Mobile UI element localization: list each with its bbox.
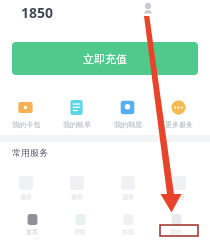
staticText: 常用服务: [12, 147, 48, 158]
button[interactable]: 立即充值: [12, 42, 198, 75]
button[interactable]: 发现: [104, 213, 152, 236]
button[interactable]: Account: [142, 2, 154, 14]
button[interactable]: 我的额度: [102, 99, 153, 129]
staticText: 我的卡包: [12, 120, 40, 129]
staticText: 服务: [173, 193, 185, 201]
button[interactable]: 我的账单: [51, 99, 102, 129]
button[interactable]: 理财: [56, 213, 104, 236]
staticText: 服务: [71, 193, 83, 201]
button[interactable]: 更多服务: [153, 99, 204, 129]
staticText: 服务: [122, 193, 134, 201]
staticText: 1850: [21, 3, 54, 22]
button[interactable]: 我的: [152, 213, 200, 236]
staticText: 我的额度: [114, 120, 142, 129]
staticText: 我的: [170, 228, 182, 236]
staticText: 我的账单: [63, 120, 91, 129]
button[interactable]: Service: [153, 176, 204, 201]
staticText: 首页: [26, 228, 38, 236]
button[interactable]: Service: [102, 176, 153, 201]
button[interactable]: Service: [51, 176, 102, 201]
staticText: 服务: [20, 193, 32, 201]
staticText: 立即充值: [83, 52, 127, 66]
button[interactable]: 我的卡包: [0, 99, 51, 129]
staticText: 理财: [74, 228, 86, 236]
button[interactable]: Service: [0, 176, 51, 201]
staticText: 更多服务: [165, 120, 193, 129]
button[interactable]: 首页: [8, 213, 56, 236]
staticText: 发现: [122, 228, 134, 236]
